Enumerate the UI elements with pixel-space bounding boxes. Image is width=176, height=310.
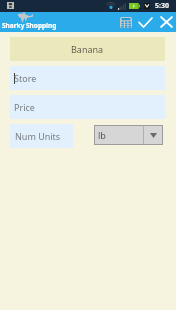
button[interactable]: lb — [95, 126, 162, 144]
staticText: Store — [14, 72, 37, 84]
button[interactable]: Store — [10, 66, 165, 90]
button[interactable]: Calculator — [117, 15, 135, 29]
staticText: lb — [98, 129, 106, 141]
staticText: Banana — [71, 43, 104, 55]
button[interactable]: Cancel — [158, 15, 174, 29]
staticText: Price — [14, 101, 35, 113]
staticText: 5:30 — [155, 1, 169, 11]
staticText: Num Units — [15, 130, 61, 142]
other: Notification — [7, 2, 14, 9]
staticText: Sharky Shopping — [2, 21, 57, 30]
button[interactable]: Save — [137, 15, 154, 29]
button[interactable]: Price — [10, 95, 165, 119]
button[interactable]: Banana — [10, 37, 165, 61]
button[interactable]: Num Units — [10, 124, 73, 148]
